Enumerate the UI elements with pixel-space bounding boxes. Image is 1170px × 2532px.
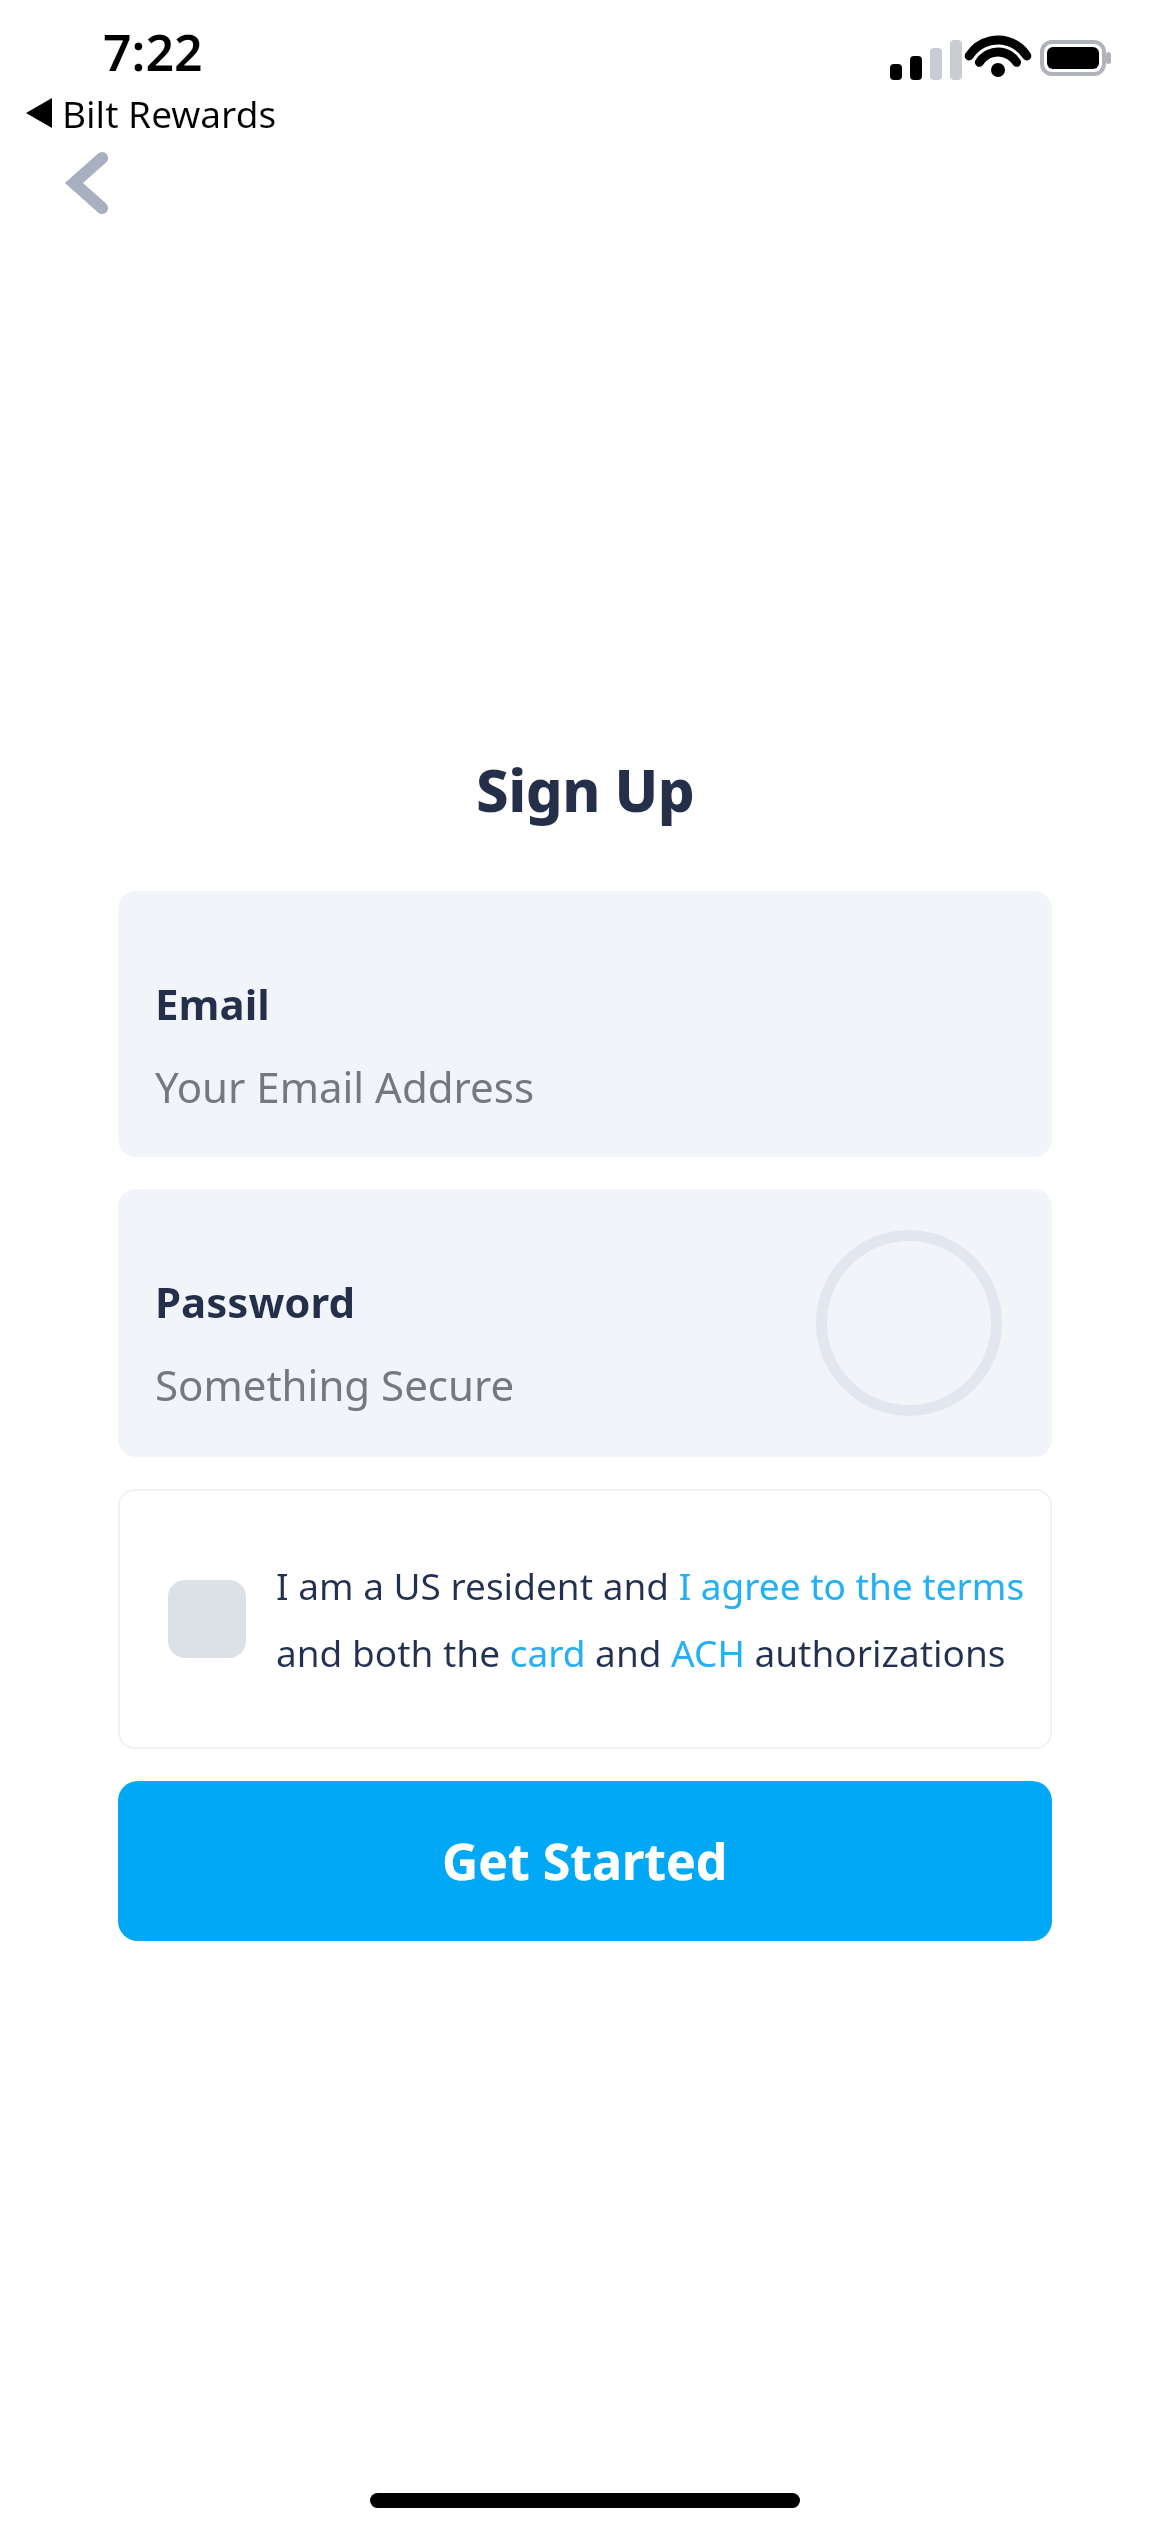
staticText: 7:22 bbox=[103, 18, 203, 86]
button[interactable]: Password bbox=[118, 1189, 1052, 1457]
button[interactable]: Back bbox=[40, 135, 136, 231]
staticText: Your Email Address bbox=[155, 1058, 535, 1115]
staticText: I am a US resident and I agree to the te… bbox=[276, 1560, 1052, 1678]
staticText: Get Started bbox=[442, 1827, 728, 1895]
staticText: Something Secure bbox=[155, 1356, 515, 1413]
staticText: Password bbox=[155, 1273, 356, 1330]
button[interactable]: I am a US resident and I agree to the te… bbox=[118, 1489, 1052, 1749]
button[interactable]: Email bbox=[118, 891, 1052, 1157]
staticText: Sign Up bbox=[476, 750, 695, 829]
staticText: Email bbox=[155, 975, 270, 1032]
button[interactable]: Get Started bbox=[118, 1781, 1052, 1941]
staticText: Bilt Rewards bbox=[62, 88, 277, 138]
